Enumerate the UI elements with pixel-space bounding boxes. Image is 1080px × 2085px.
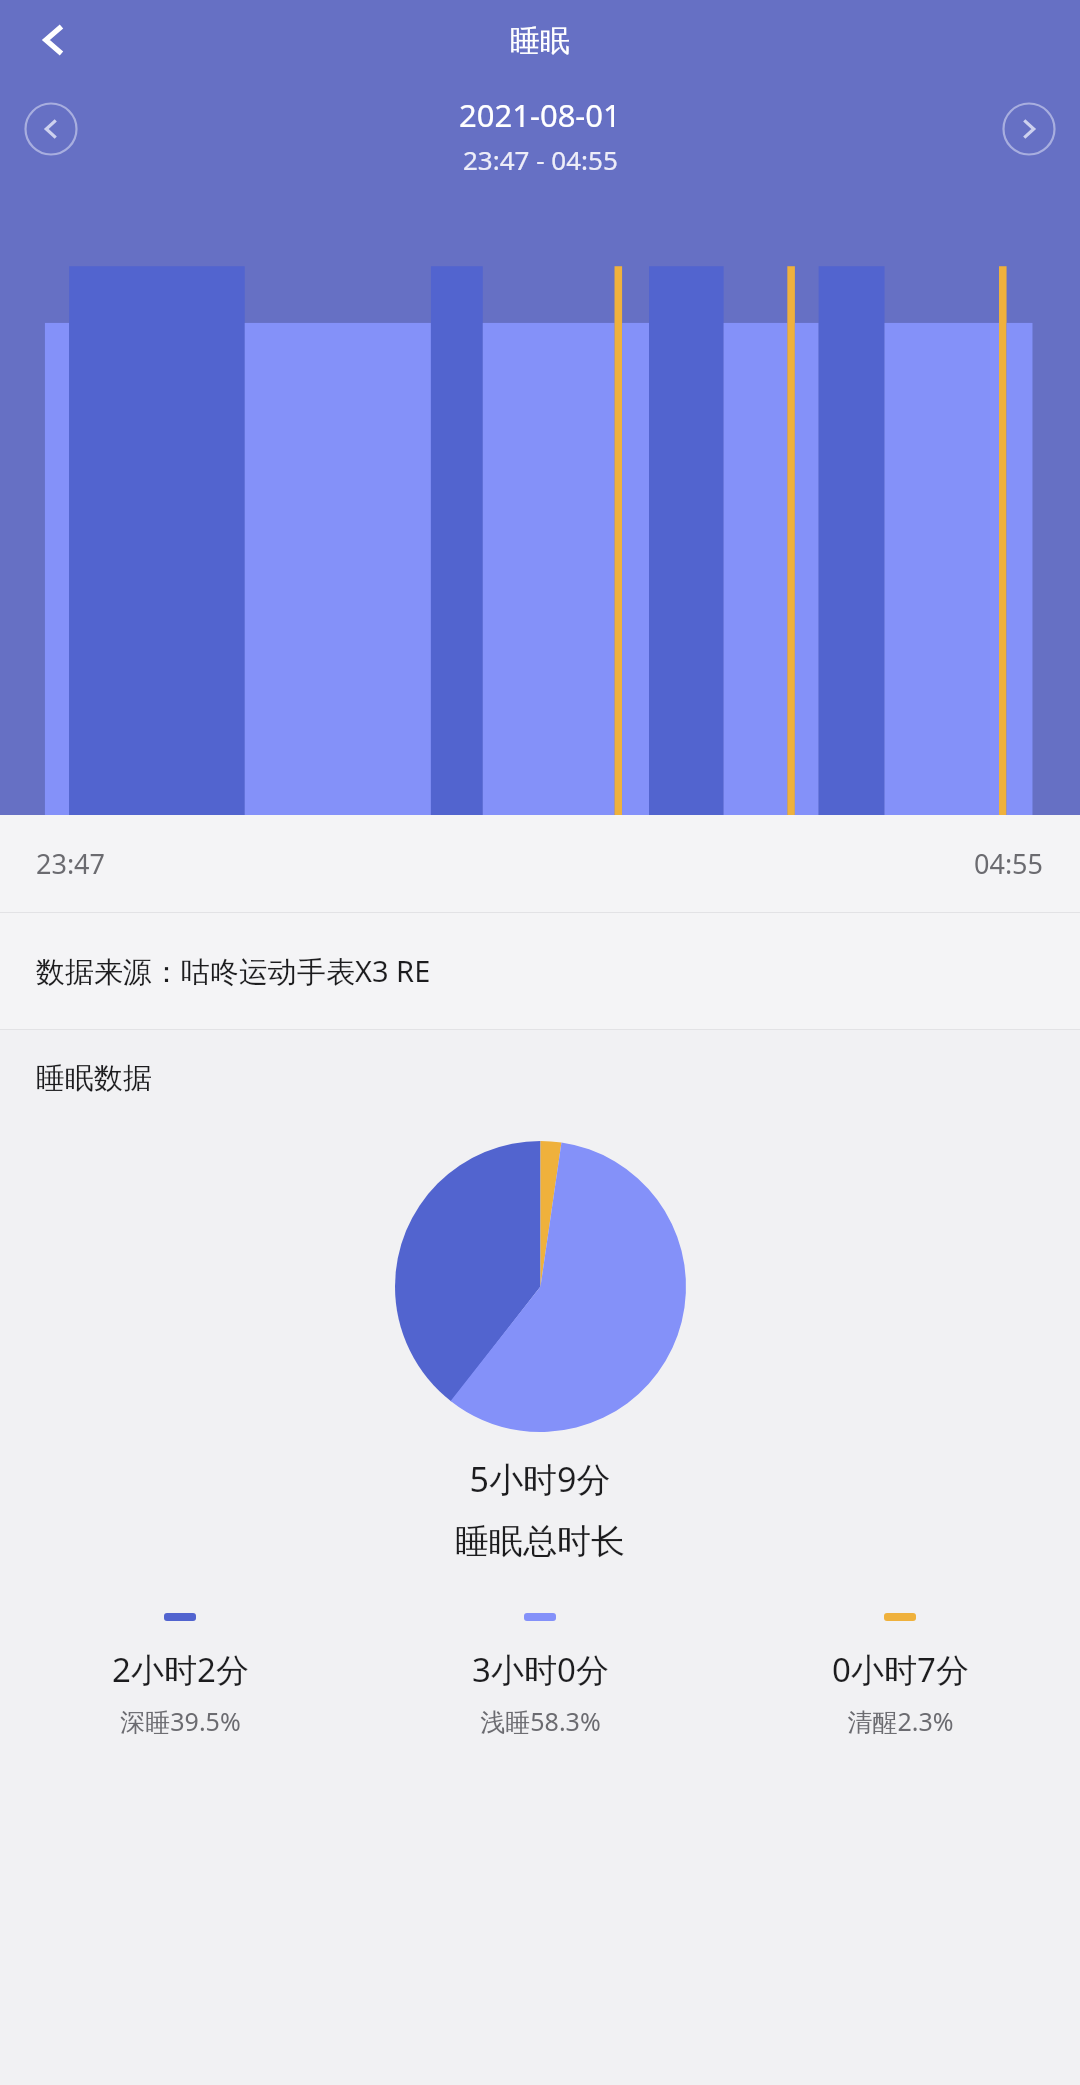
staticText: 0小时7分: [832, 1647, 969, 1692]
staticText: 浅睡58.3%: [480, 1704, 601, 1738]
button[interactable]: Next day: [1002, 102, 1056, 156]
staticText: 深睡39.5%: [120, 1704, 241, 1738]
button[interactable]: Previous day: [24, 102, 78, 156]
staticText: 2021-08-01: [459, 94, 621, 136]
staticText: 清醒2.3%: [847, 1704, 954, 1738]
staticText: 睡眠: [510, 22, 570, 60]
staticText: 2小时2分: [112, 1647, 249, 1692]
button[interactable]: Back: [22, 8, 86, 72]
staticText: 5小时9分: [0, 1456, 1080, 1502]
staticText: 3小时0分: [472, 1647, 609, 1692]
staticText: 睡眠总时长: [0, 1520, 1080, 1563]
staticText: 23:47 - 04:55: [463, 142, 618, 177]
staticText: 睡眠数据: [36, 1060, 152, 1097]
button[interactable]: 0小时7分: [720, 1613, 1080, 1738]
staticText: 04:55: [974, 845, 1044, 882]
staticText: 23:47: [36, 845, 106, 882]
staticText: 数据来源：咕咚运动手表X3 RE: [36, 951, 431, 991]
button[interactable]: 3小时0分: [360, 1613, 720, 1738]
button[interactable]: 数据来源：咕咚运动手表X3 RE: [0, 913, 1080, 1029]
button[interactable]: 2小时2分: [0, 1613, 360, 1738]
